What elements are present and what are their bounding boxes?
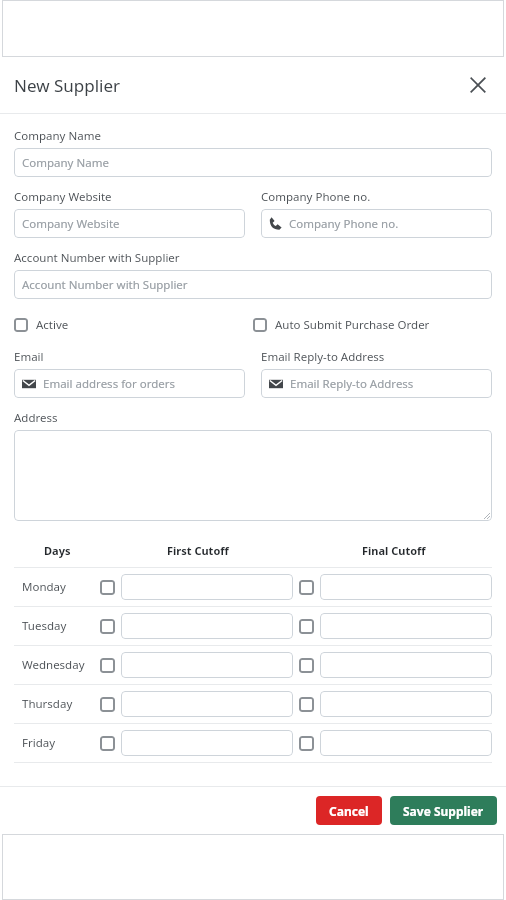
staticText: Email Reply-to Address — [261, 349, 385, 365]
staticText: Address — [14, 410, 58, 426]
button[interactable] — [121, 652, 293, 678]
staticText: Monday — [22, 579, 66, 595]
staticText: Tuesday — [22, 618, 67, 634]
button[interactable] — [14, 430, 492, 521]
button[interactable]: Wednesday final cutoff enabled — [299, 658, 314, 673]
button[interactable]: Company Name — [14, 148, 492, 177]
button[interactable] — [320, 730, 492, 756]
staticText: Company Website — [14, 189, 112, 205]
button[interactable] — [320, 574, 492, 600]
staticText: Final Cutoff — [362, 543, 426, 558]
staticText: Friday — [22, 735, 56, 751]
button[interactable]: Thursday final cutoff enabled — [299, 697, 314, 712]
button[interactable]: Thursday first cutoff enabled — [100, 697, 115, 712]
button[interactable]: Friday first cutoff enabled — [100, 736, 115, 751]
button[interactable]: Wednesday first cutoff enabled — [100, 658, 115, 673]
staticText: Account Number with Supplier — [22, 277, 188, 293]
button[interactable]: Email address for orders — [14, 369, 245, 398]
staticText: Thursday — [22, 696, 73, 712]
staticText: Company Name — [22, 155, 109, 171]
button[interactable]: Close — [464, 71, 492, 99]
button[interactable] — [320, 691, 492, 717]
button[interactable]: Email Reply-to Address — [261, 369, 492, 398]
button[interactable]: Active — [14, 315, 69, 335]
button[interactable]: Auto Submit Purchase Order — [253, 315, 430, 335]
staticText: Email — [14, 349, 44, 365]
button[interactable]: Account Number with Supplier — [14, 270, 492, 299]
staticText: Days — [44, 543, 71, 558]
button[interactable]: Monday first cutoff enabled — [100, 580, 115, 595]
staticText: Wednesday — [22, 657, 85, 673]
button[interactable]: Tuesday first cutoff enabled — [100, 619, 115, 634]
staticText: Company Phone no. — [261, 189, 371, 205]
button[interactable] — [320, 652, 492, 678]
button[interactable]: Cancel — [316, 796, 382, 825]
button[interactable] — [121, 613, 293, 639]
staticText: Save Supplier — [403, 803, 484, 819]
staticText: Cancel — [329, 803, 369, 819]
button[interactable] — [320, 613, 492, 639]
staticText: Active — [36, 317, 69, 333]
staticText: Company Website — [22, 216, 120, 232]
button[interactable]: Save Supplier — [390, 796, 497, 825]
staticText: New Supplier — [14, 74, 121, 97]
staticText: First Cutoff — [167, 543, 229, 558]
staticText: Email address for orders — [43, 376, 176, 392]
button[interactable] — [121, 574, 293, 600]
button[interactable]: Monday final cutoff enabled — [299, 580, 314, 595]
button[interactable]: Friday final cutoff enabled — [299, 736, 314, 751]
staticText: Account Number with Supplier — [14, 250, 180, 266]
button[interactable] — [121, 691, 293, 717]
staticText: Email Reply-to Address — [290, 376, 414, 392]
button[interactable]: Company Phone no. — [261, 209, 492, 238]
staticText: Auto Submit Purchase Order — [275, 317, 430, 333]
button[interactable]: Company Website — [14, 209, 245, 238]
button[interactable]: Tuesday final cutoff enabled — [299, 619, 314, 634]
staticText: Company Phone no. — [289, 216, 399, 232]
staticText: Company Name — [14, 128, 101, 144]
button[interactable] — [121, 730, 293, 756]
